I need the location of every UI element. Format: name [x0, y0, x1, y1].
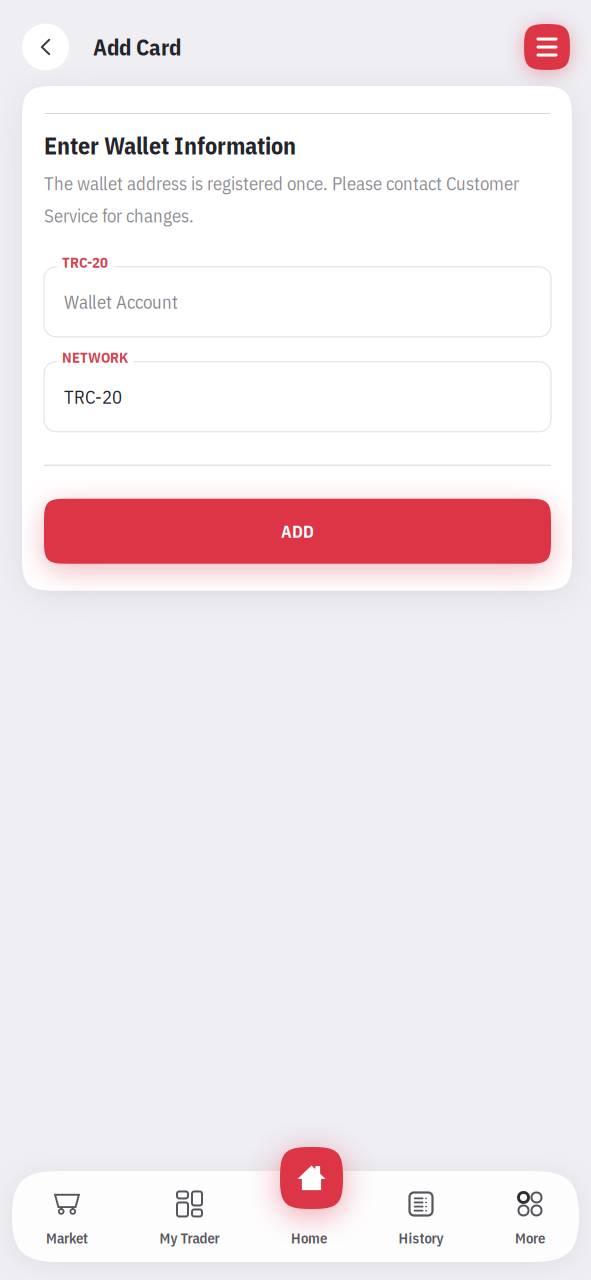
- staticText: Market: [46, 1228, 88, 1248]
- staticText: Add Card: [93, 32, 181, 62]
- staticText: My Trader: [159, 1228, 219, 1248]
- button[interactable]: Back: [22, 23, 69, 70]
- staticText: Wallet Account: [64, 290, 178, 314]
- staticText: Home: [291, 1228, 327, 1248]
- staticText: TRC-20: [64, 385, 122, 409]
- staticText: More: [515, 1228, 545, 1248]
- button[interactable]: ADD: [44, 499, 551, 564]
- staticText: ADD: [281, 520, 314, 542]
- button[interactable]: Menu: [524, 24, 570, 70]
- staticText: TRC-20: [62, 253, 108, 272]
- button[interactable]: More: [515, 1171, 545, 1262]
- staticText: Service for changes.: [44, 203, 194, 228]
- button[interactable]: My Trader: [159, 1171, 219, 1262]
- button[interactable]: Home: [291, 1171, 327, 1262]
- staticText: Enter Wallet Information: [44, 130, 296, 161]
- staticText: NETWORK: [62, 348, 128, 367]
- button[interactable]: Market: [46, 1171, 88, 1262]
- staticText: History: [398, 1228, 443, 1248]
- button[interactable]: Home: [280, 1147, 343, 1209]
- staticText: The wallet address is registered once. P…: [44, 171, 519, 195]
- button[interactable]: History: [398, 1171, 443, 1262]
